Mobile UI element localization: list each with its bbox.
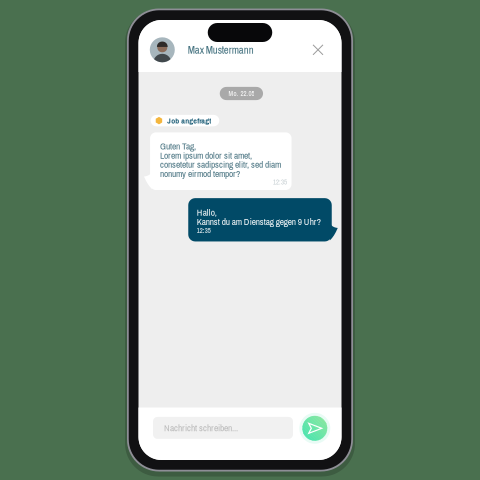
staticText: Mo. 22.05 bbox=[228, 89, 254, 98]
staticText: Hallo, bbox=[197, 206, 217, 219]
button[interactable]: Send message bbox=[299, 413, 330, 444]
staticText: Job angefragt bbox=[167, 115, 211, 126]
staticText: 12:35 bbox=[197, 226, 211, 235]
staticText: 12:35 bbox=[273, 178, 287, 187]
staticText: Kannst du am Dienstag gegen 9 Uhr? bbox=[197, 215, 321, 228]
staticText: consetetur sadipscing elitr, sed diam bbox=[160, 158, 281, 171]
staticText: Lorem ipsum dolor sit amet, bbox=[160, 149, 252, 162]
staticText: Nachricht schreiben... bbox=[164, 422, 238, 434]
staticText: nonumy eirmod tempor? bbox=[160, 167, 240, 180]
button[interactable]: Nachricht schreiben... bbox=[153, 417, 293, 439]
button[interactable]: Close conversation bbox=[308, 40, 328, 60]
staticText: Max Mustermann bbox=[188, 43, 254, 57]
staticText: Guten Tag, bbox=[160, 140, 196, 152]
